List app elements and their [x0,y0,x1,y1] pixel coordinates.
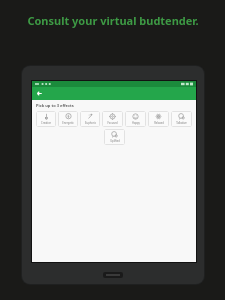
staticText: Energetic [62,121,74,125]
staticText: Focused [107,121,118,125]
button[interactable]: Relaxed [148,111,169,127]
staticText: Happy [132,121,140,125]
button[interactable]: Talkative [171,111,192,127]
button[interactable]: Back [35,89,44,98]
button[interactable]: Uplifted [104,129,125,145]
button[interactable]: Energetic [58,111,78,127]
staticText: Consult your virtual budtender. [27,13,199,28]
button[interactable]: Creative [36,111,56,127]
staticText: Relaxed [154,121,164,125]
staticText: Talkative [176,121,187,125]
staticText: Creative [41,121,51,125]
staticText: Pick up to 3 effects [36,103,74,108]
staticText: Uplifted [110,139,120,143]
button[interactable]: Focused [102,111,123,127]
button[interactable]: Euphoric [80,111,100,127]
button[interactable]: Happy [125,111,146,127]
button[interactable]: Home [103,272,123,278]
staticText: Euphoric [85,121,96,125]
